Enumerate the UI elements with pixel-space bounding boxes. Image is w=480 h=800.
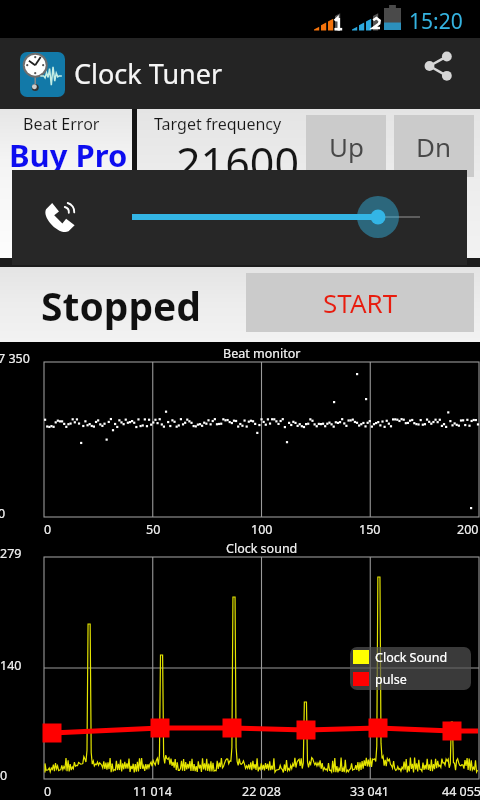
staticText: 50 [146,521,161,538]
staticText: 44 055 [442,783,480,800]
button[interactable]: Target frequency [137,109,305,258]
staticText: Beat Error [23,113,100,135]
staticText: 15:20 [409,7,463,36]
staticText: 140 [0,657,22,674]
staticText: 200 [457,521,479,538]
staticText: Stopped [41,279,202,332]
button[interactable]: Stopped [0,267,246,342]
staticText: Clock Tuner [74,55,223,92]
staticText: START [323,285,398,320]
staticText: 150 [359,521,381,538]
staticText: 22 028 [242,783,282,800]
staticText: 279 [0,545,22,562]
staticText: 11 014 [133,783,173,800]
staticText: 0 [44,783,52,800]
staticText: Beat monitor [223,345,301,362]
staticText: Buy Pro [9,134,128,176]
staticText: Clock sound [226,540,298,557]
button[interactable]: Call volume [12,170,467,265]
staticText: Dn [416,129,452,164]
button[interactable]: Dn [394,115,474,177]
staticText: 0 [0,767,8,784]
staticText: Clock Sound [375,649,448,666]
button[interactable]: START [246,273,474,332]
button[interactable]: Share [414,42,462,90]
staticText: pulse [375,671,407,688]
staticText: Up [329,129,364,164]
button[interactable]: Up [306,115,386,177]
staticText: Target frequency [154,113,282,135]
staticText: 7 350 [0,350,30,367]
staticText: 0 [44,521,52,538]
other: Call volume [43,200,77,234]
staticText: 33 041 [350,783,390,800]
staticText: 0 [0,505,6,522]
staticText: 21600 [176,133,299,192]
button[interactable]: Beat Error [0,109,132,258]
staticText: 100 [251,521,273,538]
